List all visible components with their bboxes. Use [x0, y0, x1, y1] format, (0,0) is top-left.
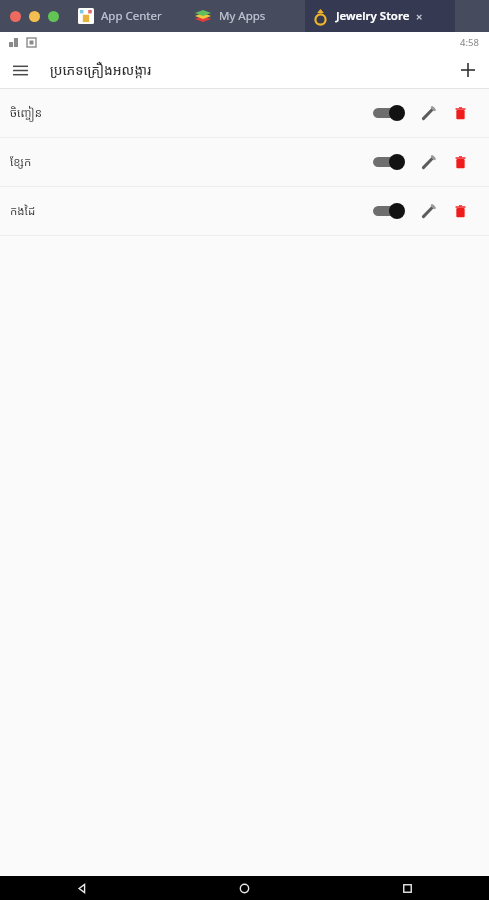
button[interactable]: Toggle active	[369, 149, 409, 175]
button[interactable]: Menu	[6, 56, 34, 84]
staticText: 4:58	[460, 36, 479, 49]
button[interactable]: Edit	[413, 98, 443, 128]
button[interactable]: កងដៃ	[0, 187, 489, 235]
button[interactable]: Toggle active	[369, 198, 409, 224]
button[interactable]: Jewelry Store	[302, 0, 462, 32]
staticText: ចិញ្ចៀន	[10, 105, 42, 121]
staticText: Jewelry Store	[336, 8, 410, 24]
button[interactable]: Delete	[445, 196, 475, 226]
button[interactable]: ខ្សែក	[0, 138, 489, 186]
button[interactable]: ចិញ្ចៀន	[0, 89, 489, 137]
button[interactable]: Edit	[413, 196, 443, 226]
staticText: កងដៃ	[10, 203, 36, 219]
staticText: App Center	[101, 8, 162, 24]
button[interactable]: Toggle active	[369, 100, 409, 126]
button[interactable]: Recent apps	[326, 876, 489, 900]
staticText: My Apps	[219, 8, 266, 24]
button[interactable]: App Center	[68, 0, 184, 32]
button[interactable]: My Apps	[184, 0, 302, 32]
staticText: ខ្សែក	[10, 154, 32, 170]
button[interactable]: Home	[163, 876, 326, 900]
button[interactable]: Delete	[445, 98, 475, 128]
button[interactable]: Add	[454, 56, 482, 84]
button[interactable]: Delete	[445, 147, 475, 177]
button[interactable]: Edit	[413, 147, 443, 177]
button[interactable]: Back	[0, 876, 163, 900]
staticText: ប្រភេទគ្រឿងអលង្ការ	[50, 61, 152, 79]
staticText: ×	[416, 9, 423, 24]
